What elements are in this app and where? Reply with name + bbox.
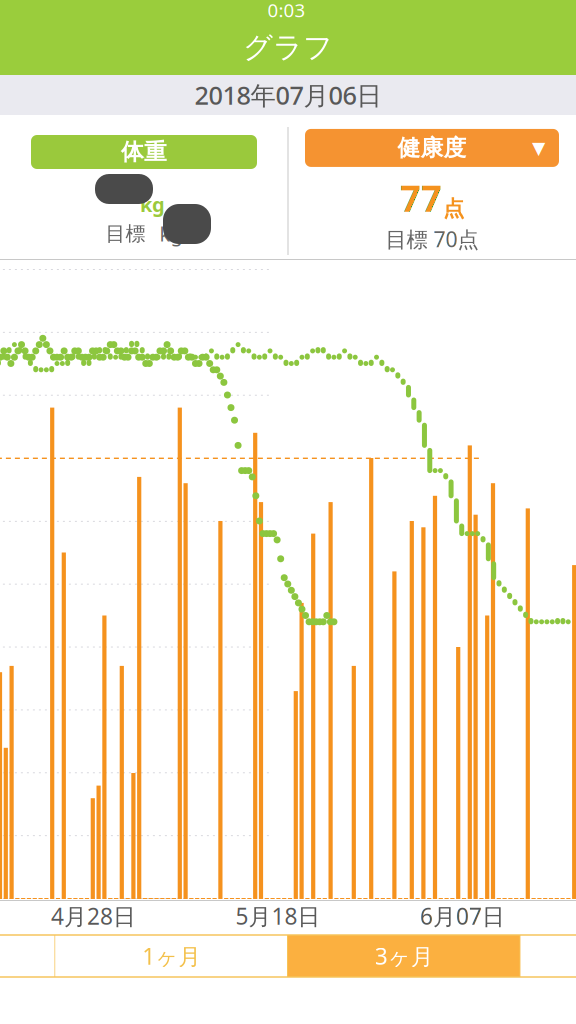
staticText: グラフ bbox=[243, 29, 333, 65]
staticText: 77 bbox=[400, 174, 442, 222]
button[interactable]: 3ヶ月 bbox=[288, 935, 520, 977]
staticText: 体重 bbox=[121, 138, 167, 166]
staticText: 4月28日 bbox=[51, 901, 136, 931]
staticText: 2018年07月06日 bbox=[194, 78, 381, 112]
button[interactable]: 6ヶ月 bbox=[521, 935, 576, 977]
staticText bbox=[123, 175, 139, 217]
staticText: 1ヶ月 bbox=[142, 941, 201, 971]
staticText: 点 bbox=[443, 195, 464, 222]
staticText: ▼ bbox=[532, 138, 545, 158]
button[interactable]: 体重 bbox=[31, 135, 257, 169]
staticText: 3ヶ月 bbox=[375, 941, 434, 971]
button[interactable]: 健康度 bbox=[305, 129, 559, 167]
button[interactable]: 1ヶ月 bbox=[55, 935, 288, 977]
staticText: kg bbox=[140, 191, 165, 217]
staticText: 目標 70点 bbox=[385, 225, 478, 253]
staticText: 5月18日 bbox=[235, 901, 320, 931]
staticText: 6月07日 bbox=[420, 901, 505, 931]
staticText: 0:03 bbox=[267, 0, 305, 22]
staticText: kg bbox=[149, 220, 182, 247]
staticText: 目標 bbox=[105, 221, 145, 246]
staticText: 健康度 bbox=[397, 134, 466, 162]
button[interactable]: 1週間 bbox=[0, 935, 55, 977]
